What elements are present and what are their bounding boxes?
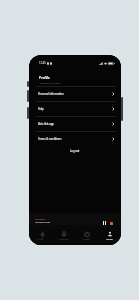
- staticText: Personal information: [38, 92, 64, 96]
- staticText: Profile: [106, 238, 113, 241]
- staticText: LIVE NOW: [35, 218, 45, 221]
- staticText: Log out: [70, 149, 80, 153]
- staticText: Manage your profile: [40, 82, 60, 85]
- button[interactable]: Stop: [109, 220, 114, 226]
- button[interactable]: Help: [29, 101, 121, 116]
- staticText: Shows: [83, 238, 90, 241]
- button[interactable]: Log out: [64, 147, 86, 155]
- button[interactable]: LIVE NOW: [29, 213, 121, 225]
- button[interactable]: Shows: [75, 225, 98, 245]
- staticText: Morning Show: [35, 221, 50, 224]
- staticText: Listen: [37, 238, 44, 241]
- button[interactable]: Rate this app: [29, 116, 121, 131]
- button[interactable]: Personal information: [29, 86, 121, 101]
- button[interactable]: Pause: [102, 220, 107, 226]
- staticText: Rate this app: [38, 122, 54, 126]
- staticText: Help: [38, 107, 44, 111]
- button[interactable]: Terms & conditions: [29, 131, 121, 146]
- button[interactable]: Podcasts: [52, 225, 75, 245]
- button[interactable]: Listen: [29, 225, 52, 245]
- button[interactable]: Profile: [98, 225, 121, 245]
- staticText: Podcasts: [59, 238, 69, 241]
- staticText: Profile: [39, 75, 50, 79]
- staticText: 12:45: [39, 61, 46, 65]
- staticText: Terms & conditions: [38, 137, 62, 141]
